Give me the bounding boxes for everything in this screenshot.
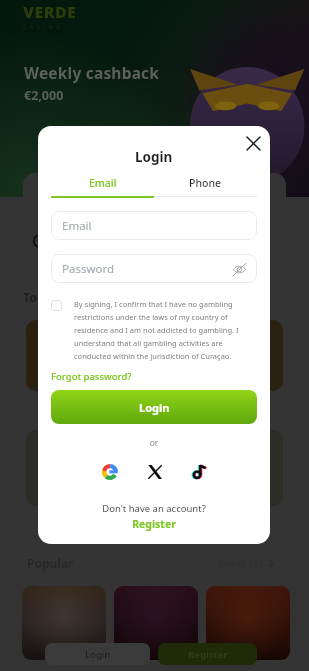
button[interactable] — [206, 586, 290, 660]
staticText: or — [51, 437, 257, 449]
button[interactable]: Login — [45, 643, 150, 665]
button[interactable]: Agree checkbox — [51, 300, 62, 311]
button[interactable]: Register — [51, 517, 257, 531]
staticText: €2,000 — [24, 87, 64, 104]
button[interactable]: Close — [240, 130, 266, 156]
staticText: Email — [89, 176, 117, 190]
staticText: Email — [62, 218, 92, 234]
staticText: VERDE — [23, 1, 77, 23]
staticText: Login — [85, 648, 111, 661]
staticText: C A S I N O — [23, 24, 62, 31]
staticText: By signing, I confirm that I have no gam… — [74, 299, 257, 361]
button[interactable]: Sign in with Google — [99, 461, 120, 482]
button[interactable]: Forgot password? — [51, 370, 132, 383]
staticText: Top — [23, 289, 46, 306]
button[interactable]: Password — [51, 254, 257, 283]
button[interactable]: Email — [51, 211, 257, 240]
button[interactable]: Sign in with X — [144, 461, 165, 482]
button[interactable]: Phone — [154, 176, 257, 197]
staticText: Login — [139, 400, 170, 415]
button[interactable]: Login — [51, 390, 257, 424]
button[interactable]: Register — [158, 643, 257, 665]
button[interactable] — [22, 586, 106, 660]
staticText: Password — [62, 261, 115, 277]
staticText: Popular — [27, 555, 74, 571]
staticText: Register — [188, 648, 228, 661]
button[interactable]: Email — [51, 176, 154, 198]
staticText: Phone — [189, 176, 222, 190]
staticText: Login — [135, 148, 173, 166]
staticText: Weekly cashback — [24, 62, 160, 83]
button[interactable]: Sign in with TikTok — [189, 461, 210, 482]
staticText: Don't have an account? — [51, 502, 257, 515]
button[interactable]: Show password — [231, 261, 247, 277]
button[interactable] — [114, 586, 198, 660]
